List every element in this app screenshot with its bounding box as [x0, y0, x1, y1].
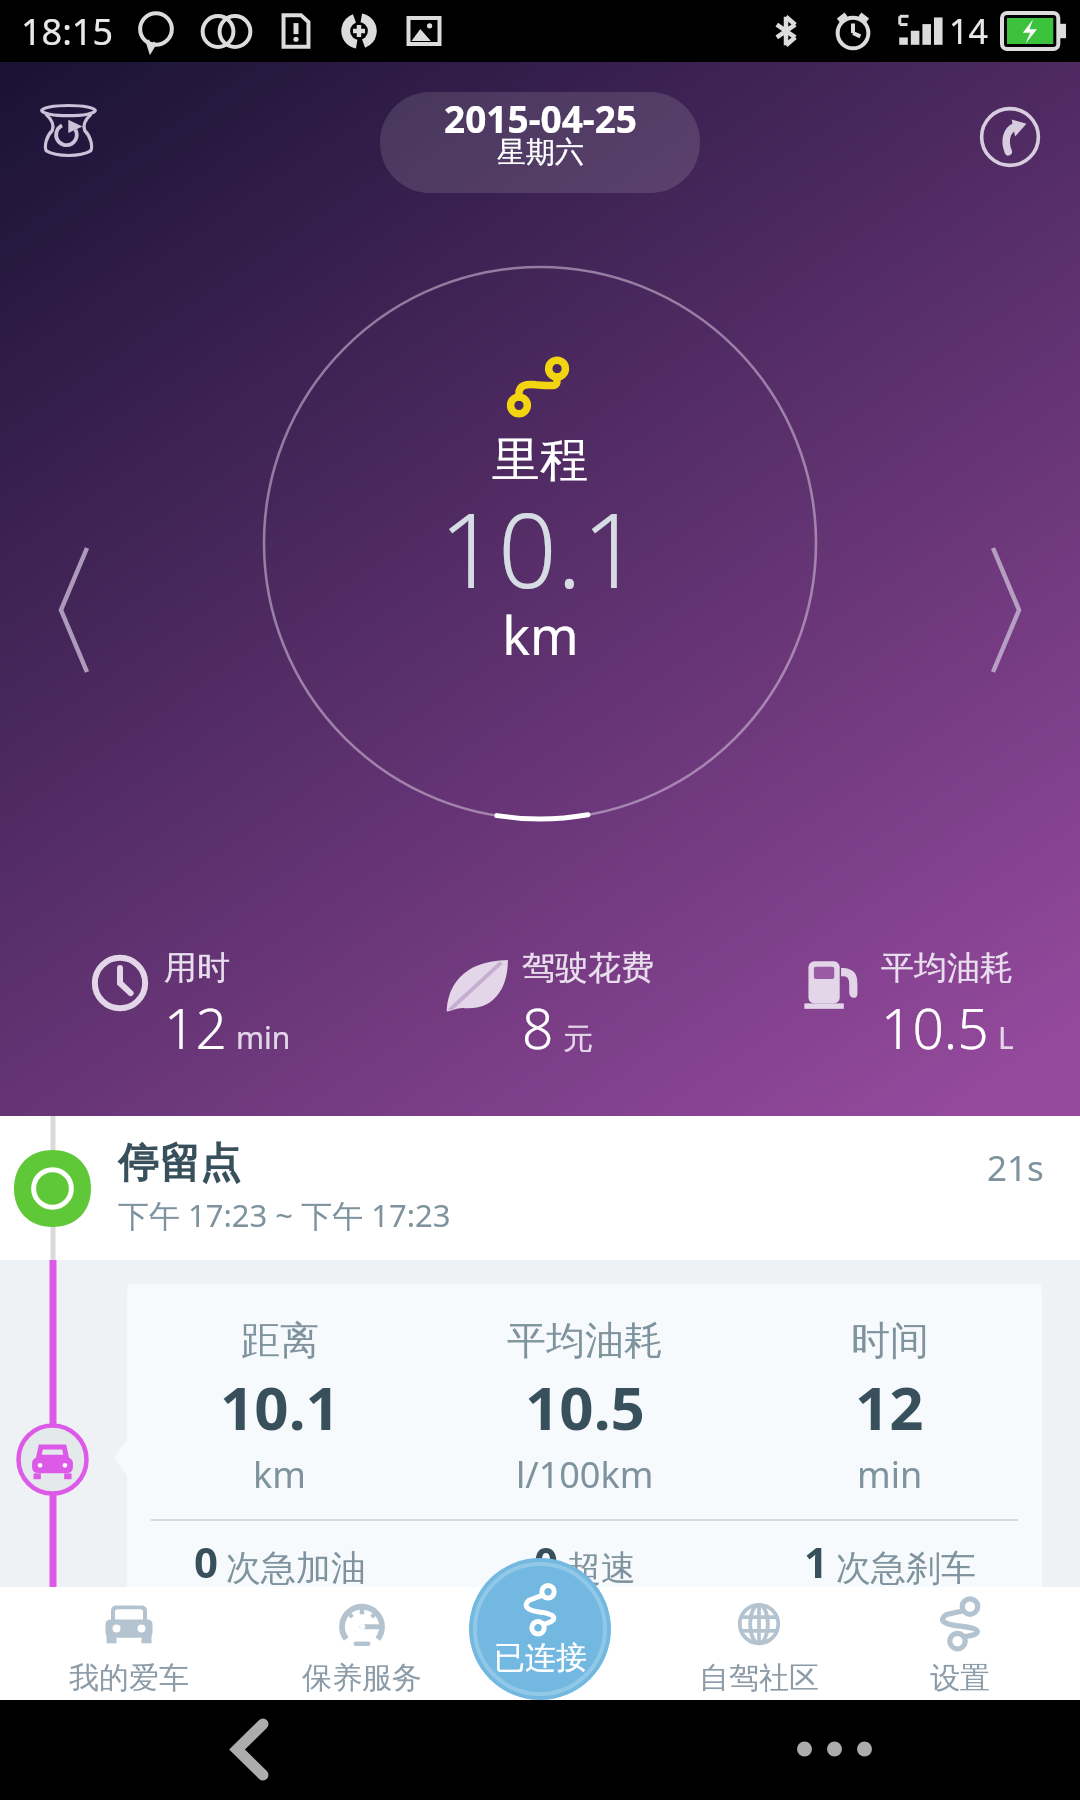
staticText: 自驾社区 [699, 1659, 819, 1697]
staticText: 10.5 [525, 1366, 645, 1448]
staticText: 里程 [492, 430, 588, 490]
staticText: 已连接 [494, 1638, 587, 1677]
button[interactable]: 我的爱车 [31, 1587, 227, 1700]
staticText: 平均油耗 [507, 1316, 663, 1365]
staticText: 设置 [930, 1659, 990, 1697]
staticText: 超速 [566, 1546, 636, 1590]
button[interactable]: 保养服务 [264, 1587, 460, 1700]
staticText: l/100km [516, 1450, 654, 1499]
button[interactable]: Back [208, 1706, 298, 1796]
staticText: min [857, 1450, 923, 1499]
staticText: km [253, 1450, 306, 1499]
staticText: 次急加油 [226, 1546, 366, 1590]
button[interactable]: 停留点 [0, 1116, 1080, 1260]
staticText: 10.1 [439, 478, 641, 618]
staticText: 我的爱车 [69, 1659, 189, 1697]
staticText: 元 [563, 1020, 593, 1058]
staticText: 14 [949, 8, 988, 54]
staticText: 下午 17:23 ~ 下午 17:23 [118, 1194, 451, 1236]
staticText: 保养服务 [302, 1659, 422, 1697]
button[interactable]: Share [955, 82, 1065, 192]
staticText: km [502, 599, 579, 670]
button[interactable]: 已连接 [469, 1558, 611, 1700]
staticText: 0 [194, 1533, 219, 1590]
staticText: 18:15 [21, 7, 114, 56]
button[interactable]: Refresh car data [14, 80, 124, 190]
staticText: 次急刹车 [836, 1546, 976, 1590]
staticText: 8 [522, 990, 554, 1065]
staticText: 12 [164, 990, 227, 1065]
button[interactable]: 2015-04-25 [380, 92, 700, 193]
button[interactable]: Previous trip [43, 522, 117, 698]
staticText: L [998, 1017, 1014, 1058]
staticText: 用时 [164, 947, 230, 989]
staticText: 星期六 [497, 134, 584, 171]
staticText: 10.1 [220, 1366, 340, 1448]
staticText: 0 [534, 1533, 559, 1590]
button[interactable]: Recent apps [772, 1714, 882, 1786]
staticText: 停留点 [118, 1138, 241, 1190]
staticText: 21s [987, 1144, 1044, 1192]
staticText: 平均油耗 [881, 947, 1013, 989]
button[interactable]: Next trip [956, 522, 1030, 698]
staticText: min [236, 1017, 291, 1058]
staticText: 时间 [851, 1316, 929, 1365]
staticText: 10.5 [881, 990, 989, 1065]
button[interactable]: 自驾社区 [661, 1587, 857, 1700]
staticText: 驾驶花费 [522, 947, 654, 989]
button[interactable]: 设置 [862, 1587, 1058, 1700]
staticText: 12 [855, 1366, 924, 1448]
staticText: 2015-04-25 [444, 93, 637, 143]
staticText: 1 [804, 1533, 829, 1590]
staticText: 距离 [241, 1316, 319, 1365]
